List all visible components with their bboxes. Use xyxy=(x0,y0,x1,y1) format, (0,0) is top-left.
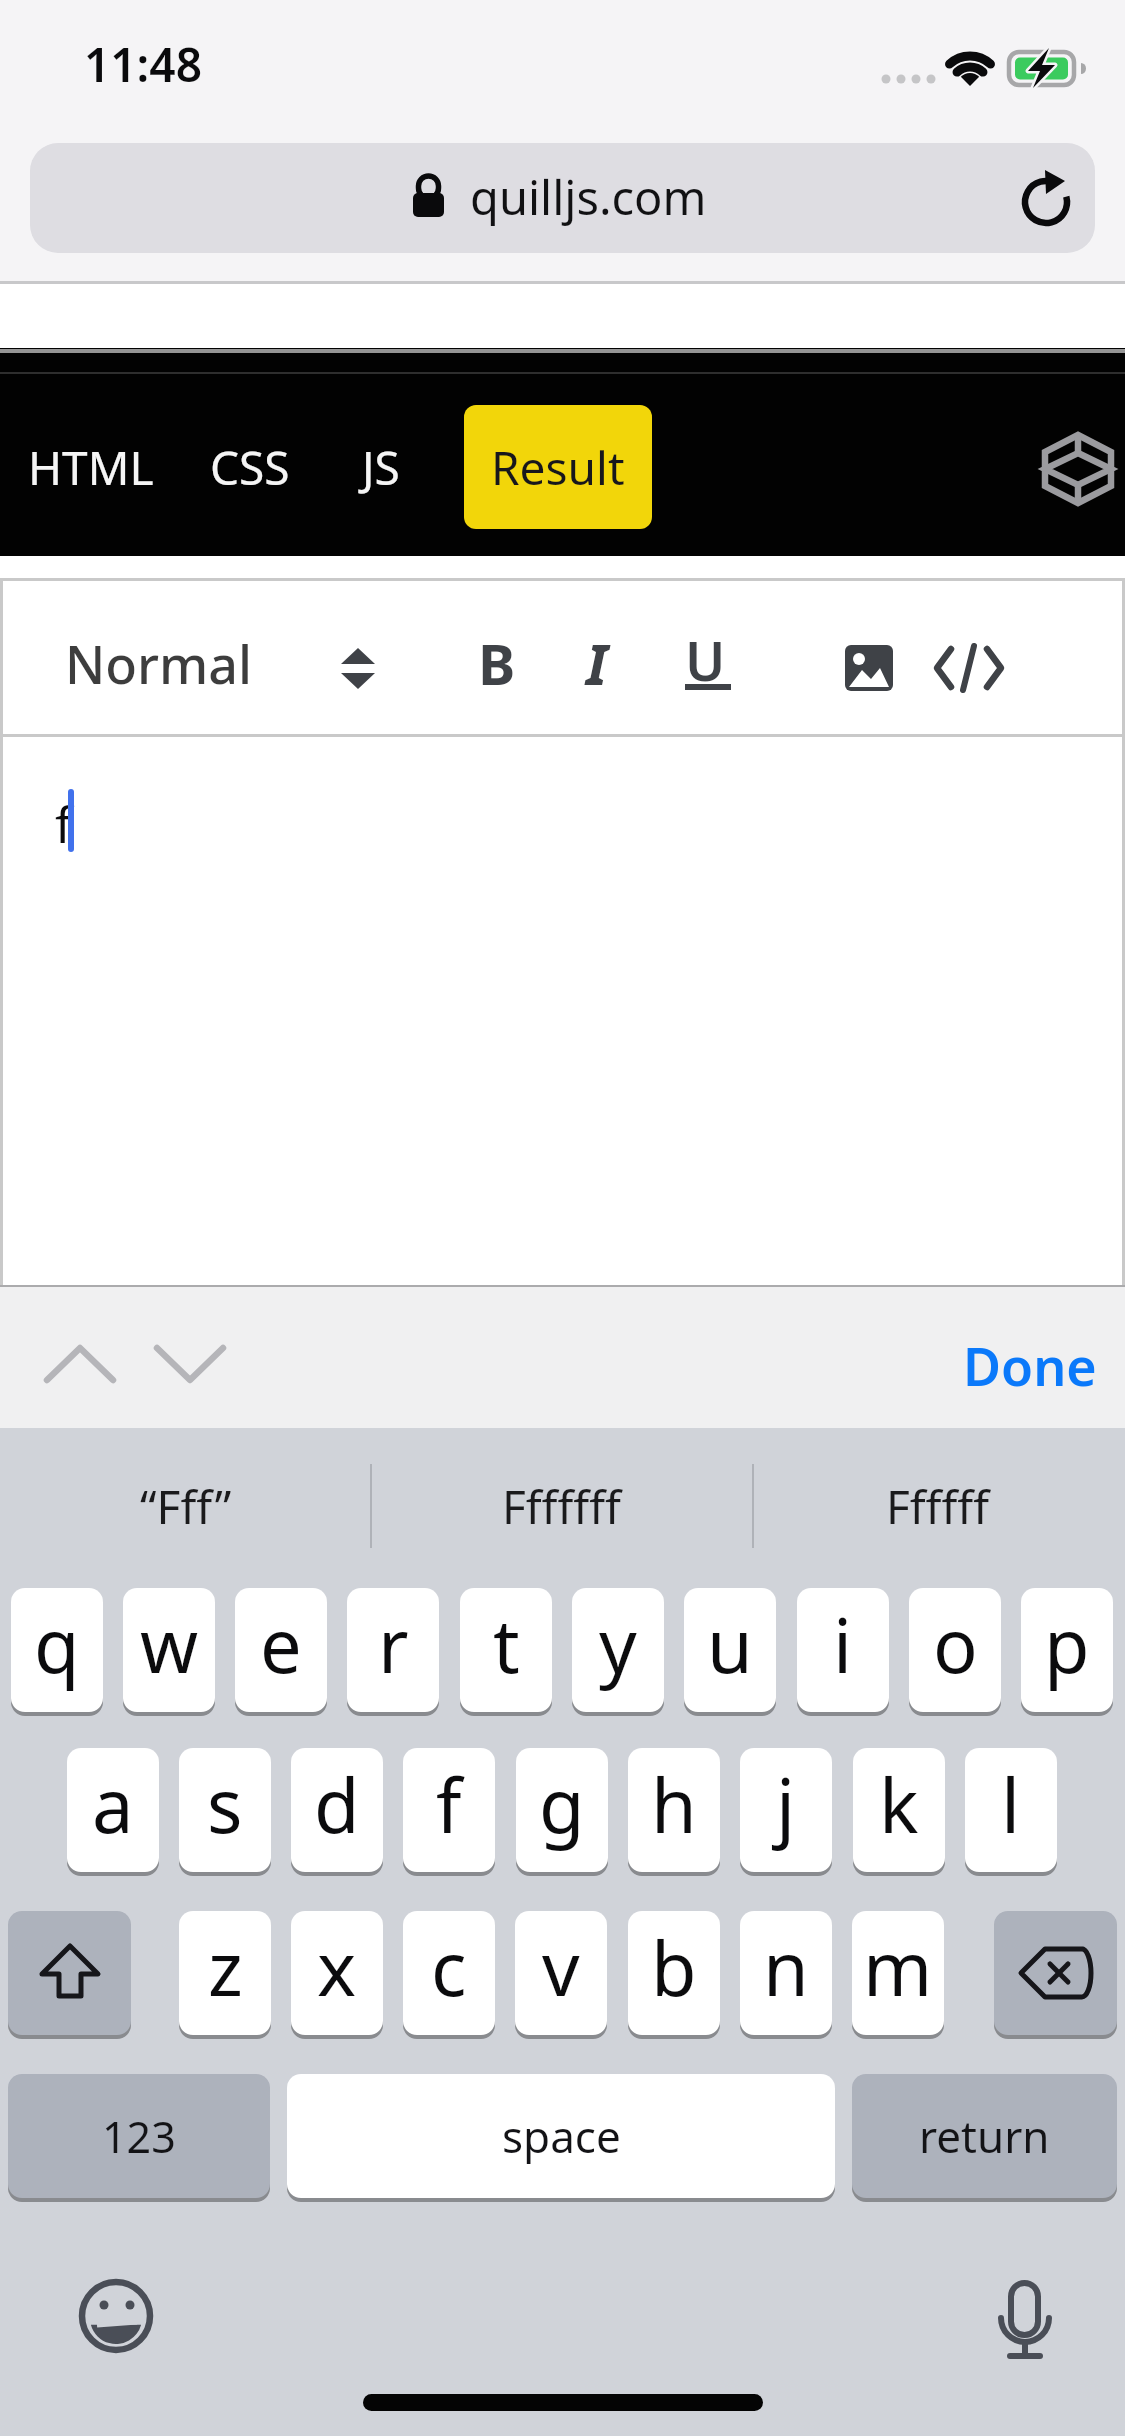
staticText: Fffffff xyxy=(502,1475,621,1538)
button[interactable]: d xyxy=(291,1748,383,1872)
button[interactable] xyxy=(8,1911,131,2035)
staticText: j xyxy=(776,1754,796,1855)
button[interactable]: w xyxy=(123,1588,215,1712)
staticText: z xyxy=(208,1917,243,2018)
staticText: w xyxy=(140,1594,199,1695)
button[interactable]: u xyxy=(684,1588,776,1712)
staticText: q xyxy=(34,1594,80,1695)
button[interactable]: l xyxy=(965,1748,1057,1872)
staticText: h xyxy=(651,1754,697,1855)
button[interactable]: k xyxy=(853,1748,945,1872)
button[interactable] xyxy=(154,1345,226,1383)
button[interactable] xyxy=(998,2278,1054,2362)
button[interactable] xyxy=(668,601,748,721)
button[interactable]: h xyxy=(628,1748,720,1872)
staticText: Ffffff xyxy=(886,1475,989,1538)
button[interactable]: z xyxy=(179,1911,271,2035)
staticText: a xyxy=(92,1754,134,1855)
button[interactable] xyxy=(994,1911,1117,2035)
staticText: e xyxy=(260,1594,302,1695)
staticText: s xyxy=(207,1754,243,1855)
staticText: l xyxy=(1001,1754,1021,1855)
button[interactable]: s xyxy=(179,1748,271,1872)
button[interactable]: j xyxy=(740,1748,832,1872)
staticText: u xyxy=(707,1594,753,1695)
button[interactable] xyxy=(78,2278,154,2354)
button[interactable]: f xyxy=(403,1748,495,1872)
button[interactable]: space xyxy=(287,2074,835,2198)
staticText: c xyxy=(431,1917,467,2018)
staticText: “Fff” xyxy=(140,1475,232,1538)
staticText: m xyxy=(863,1917,933,2018)
staticText: 11:48 xyxy=(84,33,202,96)
button[interactable]: g xyxy=(516,1748,608,1872)
staticText: v xyxy=(542,1917,580,2018)
button[interactable]: Ffffff xyxy=(750,1460,1125,1552)
button[interactable] xyxy=(43,601,383,721)
staticText: HTML xyxy=(28,436,154,499)
button[interactable] xyxy=(563,601,643,721)
staticText: return xyxy=(919,2106,1050,2166)
button[interactable]: v xyxy=(515,1911,607,2035)
button[interactable] xyxy=(210,436,298,492)
staticText: f xyxy=(436,1754,462,1855)
staticText: y xyxy=(599,1594,637,1695)
button[interactable]: c xyxy=(403,1911,495,2035)
staticText: t xyxy=(493,1594,520,1695)
button[interactable]: q xyxy=(11,1588,103,1712)
button[interactable]: return xyxy=(852,2074,1117,2198)
staticText: quilljs.com xyxy=(470,165,707,229)
staticText: I xyxy=(586,625,608,701)
staticText: U xyxy=(685,623,726,697)
button[interactable] xyxy=(458,601,538,721)
button[interactable]: m xyxy=(852,1911,944,2035)
staticText: g xyxy=(539,1754,585,1855)
staticText: i xyxy=(833,1594,853,1695)
button[interactable]: 123 xyxy=(8,2074,270,2198)
staticText: B xyxy=(478,625,516,701)
button[interactable]: x xyxy=(291,1911,383,2035)
button[interactable]: y xyxy=(572,1588,664,1712)
staticText: n xyxy=(763,1917,809,2018)
staticText: p xyxy=(1044,1594,1090,1695)
button[interactable]: t xyxy=(460,1588,552,1712)
staticText: JS xyxy=(362,436,400,499)
button[interactable] xyxy=(935,645,1003,691)
button[interactable] xyxy=(28,436,146,492)
button[interactable]: quilljs.com xyxy=(30,143,1095,253)
button[interactable]: Fffffff xyxy=(374,1460,748,1552)
button[interactable] xyxy=(940,1305,1100,1415)
staticText: k xyxy=(879,1754,919,1855)
staticText: x xyxy=(317,1917,357,2018)
button[interactable]: r xyxy=(347,1588,439,1712)
button[interactable]: a xyxy=(67,1748,159,1872)
staticText: d xyxy=(314,1754,360,1855)
button[interactable]: f xyxy=(3,737,1122,1285)
button[interactable]: Result xyxy=(464,405,652,529)
button[interactable] xyxy=(362,436,414,492)
button[interactable]: b xyxy=(628,1911,720,2035)
button[interactable] xyxy=(845,645,893,691)
button[interactable]: “Fff” xyxy=(0,1460,372,1552)
staticText: Normal xyxy=(65,628,253,699)
button[interactable]: e xyxy=(235,1588,327,1712)
button[interactable]: o xyxy=(909,1588,1001,1712)
button[interactable] xyxy=(44,1345,116,1383)
button[interactable]: i xyxy=(797,1588,889,1712)
staticText: Done xyxy=(963,1330,1097,1401)
staticText: Result xyxy=(491,436,625,499)
staticText: o xyxy=(933,1594,978,1695)
staticText: CSS xyxy=(210,436,290,499)
staticText: space xyxy=(502,2106,621,2166)
staticText: r xyxy=(378,1594,409,1695)
staticText: b xyxy=(651,1917,697,2018)
button[interactable] xyxy=(1043,433,1113,505)
button[interactable]: p xyxy=(1021,1588,1113,1712)
staticText: f xyxy=(55,790,73,858)
staticText: 123 xyxy=(102,2107,176,2166)
button[interactable]: n xyxy=(740,1911,832,2035)
